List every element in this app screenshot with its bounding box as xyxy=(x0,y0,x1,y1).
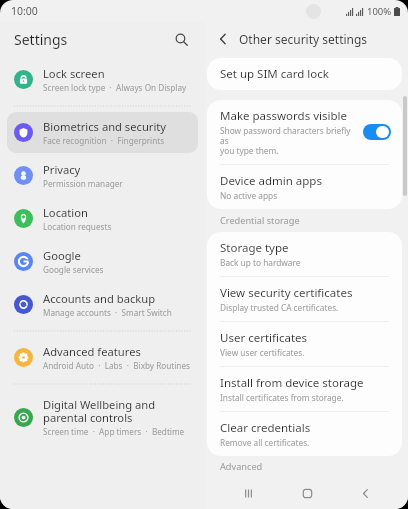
button[interactable]: Install from device storage xyxy=(207,367,402,411)
button[interactable]: Set up SIM card lock xyxy=(207,58,402,90)
staticText: Remove all certificates. xyxy=(220,437,310,448)
staticText: Make passwords visible xyxy=(220,108,347,124)
staticText: Location requests xyxy=(43,221,112,232)
staticText: Show password characters briefly as you … xyxy=(220,125,355,156)
button[interactable]: Location xyxy=(7,198,198,239)
button[interactable]: Search xyxy=(168,26,194,52)
staticText: Screen time · App timers · Bedtime mode xyxy=(43,426,192,437)
button[interactable]: Accounts and backup xyxy=(7,284,198,325)
button[interactable]: Advanced features xyxy=(7,337,198,378)
staticText: Display trusted CA certificates. xyxy=(220,302,339,313)
staticText: Advanced xyxy=(220,460,263,473)
button[interactable]: Back xyxy=(211,27,235,51)
button[interactable]: Storage type xyxy=(207,232,402,276)
staticText: Back up to hardware xyxy=(220,257,301,268)
staticText: Install from device storage xyxy=(220,375,364,391)
staticText: 100% xyxy=(367,5,392,18)
staticText: Clear credentials xyxy=(220,420,311,436)
button[interactable]: Clear credentials xyxy=(207,412,402,456)
staticText: Face recognition · Fingerprints xyxy=(43,135,165,146)
button[interactable]: Google xyxy=(7,241,198,282)
staticText: Privacy xyxy=(43,162,81,177)
staticText: Google services xyxy=(43,264,104,275)
staticText: Digital Wellbeing and parental controls xyxy=(43,397,192,425)
staticText: Screen lock type · Always On Display xyxy=(43,82,187,93)
button[interactable]: Back xyxy=(349,477,381,509)
staticText: 10:00 xyxy=(11,4,38,18)
staticText: Google xyxy=(43,248,81,263)
button[interactable]: Privacy xyxy=(7,155,198,196)
button[interactable]: Digital Wellbeing and parental controls xyxy=(7,390,198,444)
staticText: Biometrics and security xyxy=(43,119,167,134)
staticText: Device admin apps xyxy=(220,173,322,189)
button[interactable]: Recents xyxy=(232,477,264,509)
staticText: Other security settings xyxy=(239,31,368,47)
staticText: Android Auto · Labs · Bixby Routines xyxy=(43,360,190,371)
button[interactable]: Biometrics and security xyxy=(7,112,198,153)
staticText: No active apps xyxy=(220,190,278,201)
button[interactable]: Home xyxy=(291,477,323,509)
staticText: Location xyxy=(43,205,88,220)
button[interactable]: User certificates xyxy=(207,322,402,366)
staticText: Install certificates from storage. xyxy=(220,392,344,403)
staticText: Lock screen xyxy=(43,66,105,81)
staticText: Advanced features xyxy=(43,344,141,359)
button[interactable]: Lock screen xyxy=(7,59,198,100)
staticText: View user certificates. xyxy=(220,347,305,358)
staticText: User certificates xyxy=(220,330,308,346)
staticText: Manage accounts · Smart Switch xyxy=(43,307,172,318)
button[interactable]: Make passwords visible xyxy=(207,100,402,164)
staticText: Storage type xyxy=(220,240,289,256)
staticText: View security certificates xyxy=(220,285,353,301)
staticText: Credential storage xyxy=(220,214,300,227)
staticText: Set up SIM card lock xyxy=(220,66,329,82)
staticText: Permission manager xyxy=(43,178,123,189)
button[interactable]: Device admin apps xyxy=(207,165,402,209)
staticText: Settings xyxy=(14,30,68,49)
button[interactable]: Make passwords visible xyxy=(363,124,391,140)
staticText: Accounts and backup xyxy=(43,291,156,306)
button[interactable]: View security certificates xyxy=(207,277,402,321)
